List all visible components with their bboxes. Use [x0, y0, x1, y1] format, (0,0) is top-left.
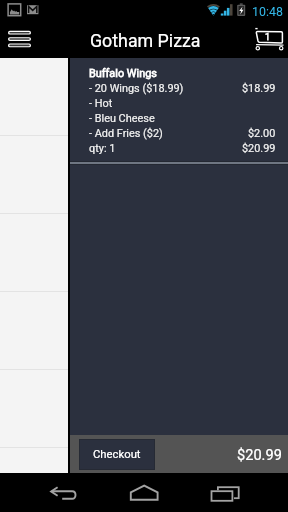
- staticText: - Add Fries ($2): [89, 127, 163, 140]
- staticText: $2.00: [248, 127, 276, 140]
- staticText: Gotham Pizza: [90, 30, 201, 51]
- staticText: $20.99: [242, 142, 276, 155]
- button[interactable]: Open navigation menu: [0, 22, 40, 58]
- staticText: $20.99: [237, 446, 282, 463]
- staticText: $18.99: [242, 82, 276, 95]
- button[interactable]: Checkout: [79, 439, 155, 470]
- staticText: - 20 Wings ($18.99): [89, 82, 184, 95]
- staticText: Buffalo Wings: [89, 67, 157, 80]
- staticText: - Hot: [89, 97, 113, 110]
- staticText: Checkout: [93, 448, 141, 461]
- button[interactable]: Recent apps: [200, 473, 248, 512]
- button[interactable]: Back: [40, 473, 88, 512]
- staticText: qty: 1: [89, 142, 116, 155]
- staticText: - Bleu Cheese: [89, 112, 155, 125]
- button[interactable]: Shopping cart, 1 item: [250, 22, 288, 58]
- button[interactable]: Home: [120, 473, 168, 512]
- staticText: 1: [265, 32, 271, 43]
- staticText: 10:48: [252, 4, 283, 19]
